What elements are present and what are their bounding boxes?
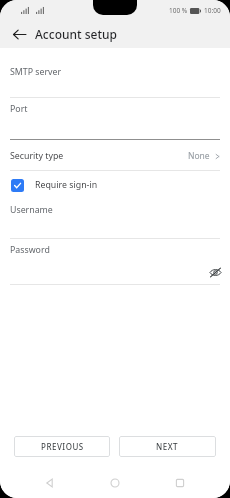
staticText: Port bbox=[10, 103, 28, 115]
staticText: 10:00 bbox=[204, 6, 221, 15]
button[interactable]: Back bbox=[6, 21, 32, 47]
staticText: PREVIOUS bbox=[41, 441, 84, 452]
staticText: NEXT bbox=[156, 441, 179, 452]
button[interactable]: PREVIOUS bbox=[14, 436, 110, 457]
button[interactable]: Back bbox=[35, 468, 65, 498]
staticText: SMTP server bbox=[10, 66, 62, 78]
staticText: Account setup bbox=[35, 26, 118, 42]
button[interactable]: SMTP server bbox=[0, 61, 230, 98]
staticText: Password bbox=[10, 244, 50, 256]
button[interactable]: Show password bbox=[206, 263, 224, 281]
button[interactable]: Security type bbox=[0, 140, 230, 171]
button[interactable]: Home bbox=[100, 468, 130, 498]
button[interactable]: Recents bbox=[165, 468, 195, 498]
staticText: None bbox=[188, 150, 210, 162]
button[interactable]: Require sign-in bbox=[0, 171, 230, 199]
staticText: 100 % bbox=[169, 6, 188, 15]
button[interactable]: Username bbox=[0, 199, 230, 239]
staticText: Username bbox=[10, 204, 53, 216]
button[interactable]: Port bbox=[0, 98, 230, 140]
staticText: Security type bbox=[10, 150, 64, 162]
staticText: Require sign-in bbox=[35, 179, 98, 191]
button[interactable]: NEXT bbox=[119, 436, 216, 457]
